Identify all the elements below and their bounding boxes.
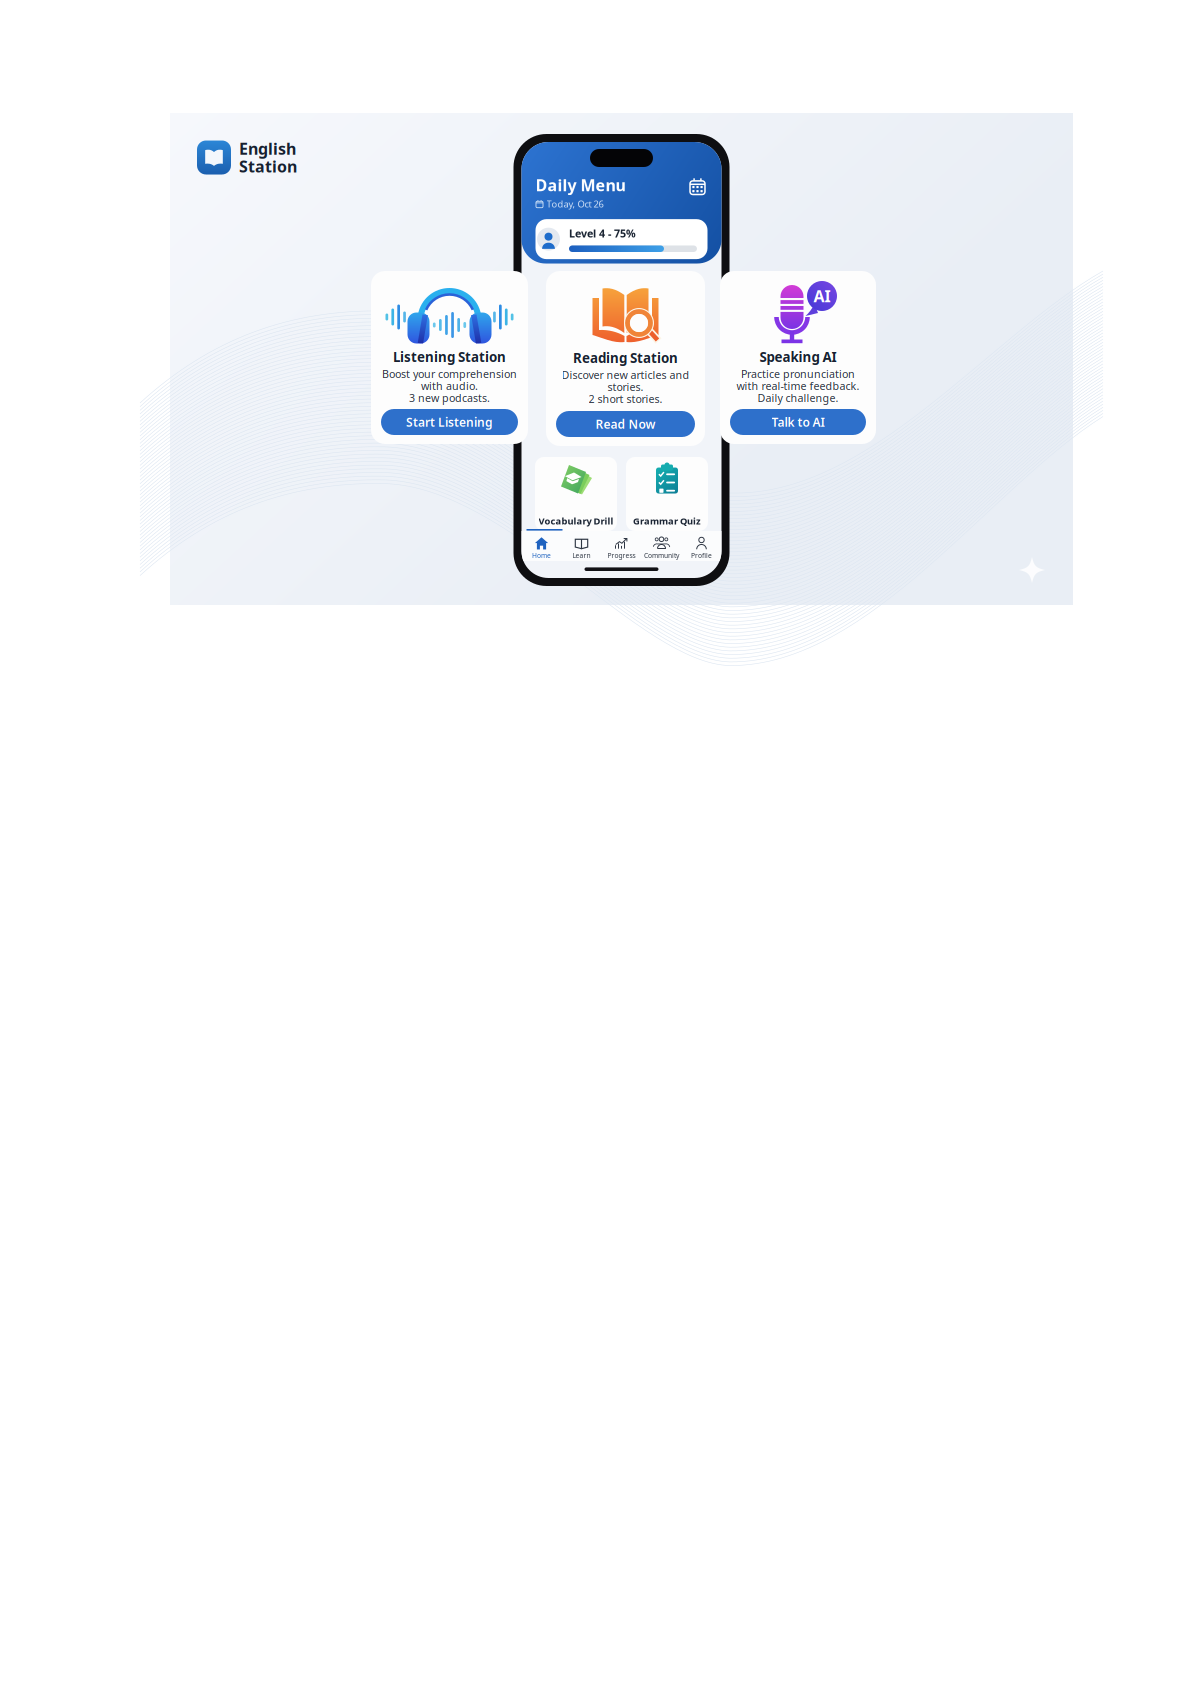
button[interactable]: Home: [521, 537, 561, 560]
staticText: with real-time feedback.: [736, 379, 859, 393]
staticText: Profile: [691, 551, 712, 560]
staticText: Discover new articles and: [561, 368, 689, 382]
button[interactable]: Read Now: [556, 411, 695, 437]
staticText: Home: [532, 551, 551, 560]
staticText: Daily challenge.: [757, 391, 838, 405]
button[interactable]: Calendar: [687, 174, 707, 196]
button[interactable]: Learn: [561, 537, 601, 560]
staticText: Boost your comprehension: [382, 367, 517, 381]
button[interactable]: Community: [641, 537, 681, 560]
staticText: Daily Menu: [535, 174, 625, 196]
button[interactable]: Talk to AI: [730, 409, 866, 435]
staticText: Station: [239, 156, 297, 177]
button[interactable]: Vocabulary Drill: [535, 457, 617, 531]
staticText: AI: [813, 285, 830, 307]
staticText: stories.: [607, 380, 643, 394]
staticText: Level 4 - 75%: [569, 226, 636, 240]
staticText: Learn: [572, 551, 590, 560]
staticText: Practice pronunciation: [741, 367, 855, 381]
staticText: Progress: [607, 551, 635, 560]
staticText: English: [239, 138, 296, 159]
staticText: with audio.: [421, 379, 478, 393]
staticText: Talk to AI: [771, 414, 824, 430]
staticText: 2 short stories.: [588, 392, 662, 406]
staticText: Speaking AI: [759, 348, 836, 366]
staticText: Listening Station: [393, 348, 506, 366]
staticText: Grammar Quiz: [633, 515, 701, 527]
staticText: 3 new podcasts.: [409, 391, 490, 405]
button[interactable]: Start Listening: [381, 409, 518, 435]
staticText: Community: [644, 551, 679, 560]
staticText: Today, Oct 26: [546, 198, 603, 210]
staticText: Read Now: [595, 416, 655, 432]
button[interactable]: Grammar Quiz: [626, 457, 708, 531]
button[interactable]: Progress: [601, 537, 641, 560]
staticText: Reading Station: [573, 349, 678, 367]
staticText: Vocabulary Drill: [538, 515, 613, 527]
staticText: Start Listening: [406, 414, 493, 430]
button[interactable]: Profile: [681, 537, 721, 560]
